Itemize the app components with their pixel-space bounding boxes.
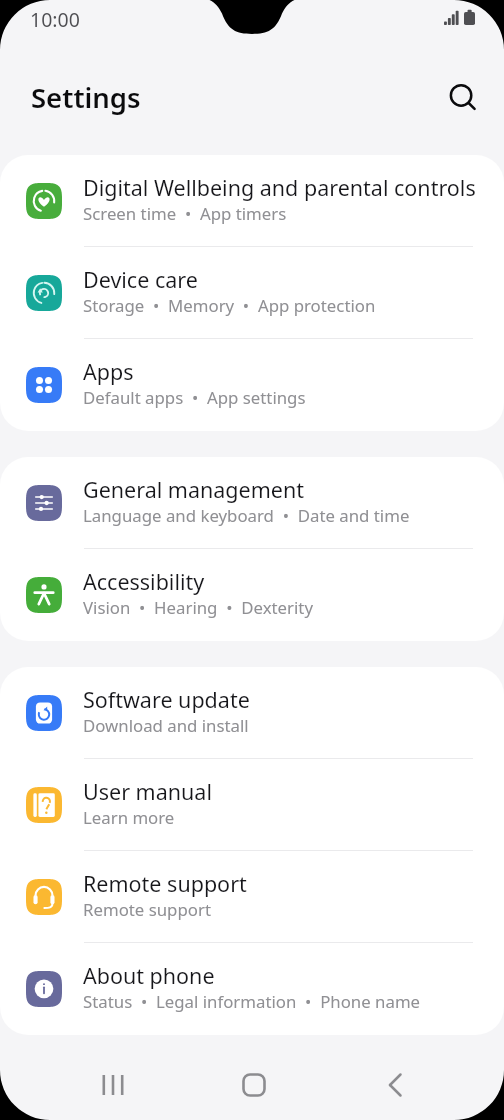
- staticText: Accessibility: [83, 567, 205, 596]
- staticText: Digital Wellbeing and parental controls: [83, 173, 476, 202]
- staticText: Vision • Hearing • Dexterity: [83, 596, 313, 619]
- button[interactable]: User manual: [0, 759, 504, 851]
- button[interactable]: Search: [438, 73, 488, 123]
- staticText: General management: [83, 475, 304, 504]
- button[interactable]: Software update: [0, 667, 504, 759]
- staticText: Device care: [83, 265, 198, 294]
- button[interactable]: Home: [229, 1060, 278, 1109]
- button[interactable]: Digital Wellbeing and parental controls: [0, 155, 504, 247]
- staticText: Language and keyboard • Date and time: [83, 504, 410, 527]
- button[interactable]: About phone: [0, 943, 504, 1035]
- button[interactable]: Back: [370, 1060, 419, 1109]
- staticText: Remote support: [83, 898, 211, 921]
- staticText: About phone: [83, 961, 215, 990]
- button[interactable]: Recents: [88, 1060, 137, 1109]
- staticText: Status • Legal information • Phone name: [83, 990, 421, 1013]
- staticText: Storage • Memory • App protection: [83, 294, 376, 317]
- staticText: Settings: [31, 79, 141, 116]
- staticText: Apps: [83, 357, 134, 386]
- button[interactable]: Apps: [0, 339, 504, 431]
- staticText: Download and install: [83, 714, 249, 737]
- staticText: Screen time • App timers: [83, 202, 287, 225]
- button[interactable]: General management: [0, 457, 504, 549]
- staticText: Learn more: [83, 806, 175, 829]
- button[interactable]: Accessibility: [0, 549, 504, 641]
- button[interactable]: Device care: [0, 247, 504, 339]
- button[interactable]: Remote support: [0, 851, 504, 943]
- staticText: Remote support: [83, 869, 247, 898]
- staticText: Software update: [83, 685, 250, 714]
- staticText: 10:00: [30, 6, 80, 33]
- staticText: User manual: [83, 777, 212, 806]
- staticText: Default apps • App settings: [83, 386, 306, 409]
